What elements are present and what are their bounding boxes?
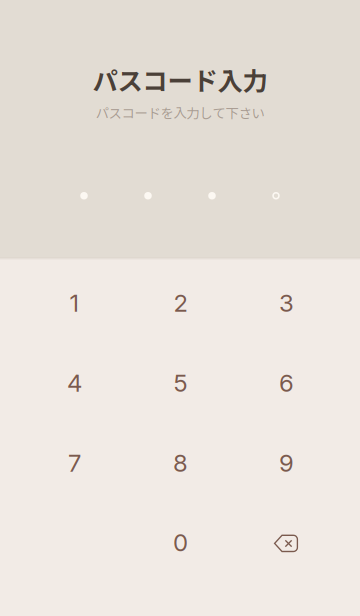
- button[interactable]: 1: [21, 262, 127, 342]
- button[interactable]: 9: [233, 422, 339, 502]
- button[interactable]: 7: [21, 422, 127, 502]
- button[interactable]: Delete: [233, 501, 339, 581]
- staticText: 1: [69, 288, 79, 317]
- button[interactable]: 0: [127, 501, 233, 581]
- staticText: 0: [173, 528, 188, 557]
- button[interactable]: 8: [127, 422, 233, 502]
- button[interactable]: 6: [233, 342, 339, 422]
- staticText: パスコードを入力して下さい: [95, 103, 264, 122]
- button[interactable]: 3: [233, 262, 339, 342]
- button[interactable]: 2: [127, 262, 233, 342]
- staticText: 5: [173, 368, 187, 397]
- staticText: 2: [173, 288, 187, 317]
- staticText: 8: [173, 448, 188, 477]
- button[interactable]: 5: [127, 342, 233, 422]
- staticText: パスコード入力: [92, 61, 267, 98]
- staticText: 4: [67, 368, 82, 397]
- staticText: 7: [68, 448, 81, 477]
- staticText: 3: [279, 288, 294, 317]
- staticText: 6: [279, 368, 294, 397]
- staticText: 9: [279, 448, 294, 477]
- button[interactable]: 4: [21, 342, 127, 422]
